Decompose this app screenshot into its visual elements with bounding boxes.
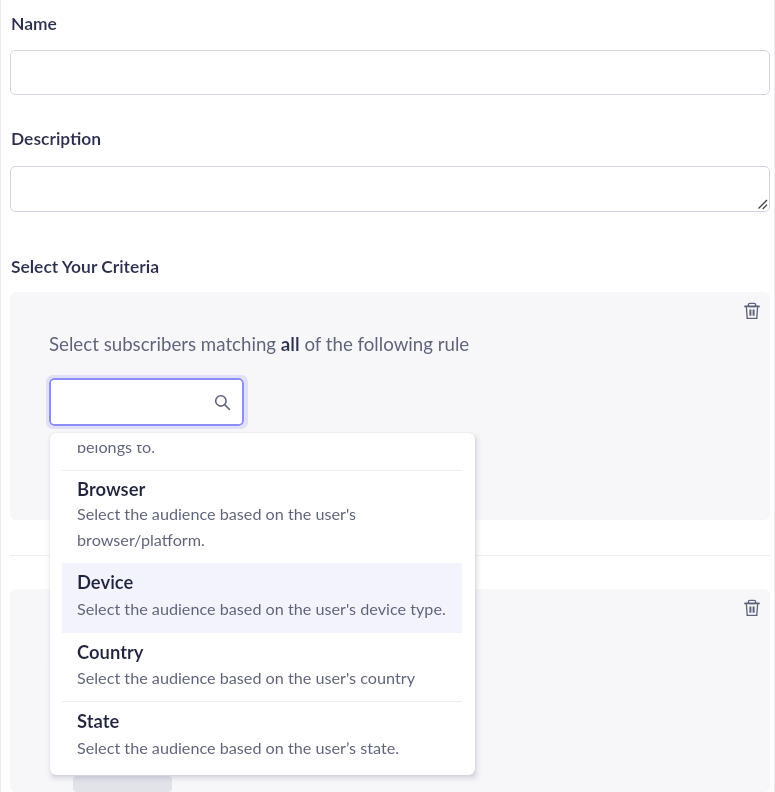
button[interactable]	[49, 378, 244, 426]
button[interactable]: Device	[62, 563, 462, 633]
staticText: Select the audience based on the user’s …	[77, 738, 400, 757]
staticText: Browser	[77, 478, 146, 500]
staticText: Description	[11, 128, 102, 149]
button[interactable]: Delete criteria	[738, 297, 766, 325]
staticText: Select the audience based on the user's …	[77, 504, 357, 550]
button[interactable]: State	[62, 702, 462, 775]
button[interactable]	[73, 776, 172, 792]
staticText: Select the audience based on the user's …	[77, 599, 446, 618]
staticText: Device	[77, 571, 134, 593]
button[interactable]	[10, 50, 770, 95]
staticText: Select the audience based on the user's …	[77, 668, 416, 687]
staticText: Name	[11, 13, 57, 34]
staticText: Select subscribers matching all of the f…	[49, 333, 470, 355]
staticText: Select Your Criteria	[11, 256, 160, 277]
staticText: belongs to.	[77, 445, 155, 456]
staticText: Country	[77, 641, 144, 663]
button[interactable]: Country	[62, 633, 462, 701]
staticText: State	[77, 710, 120, 732]
button[interactable]: Delete criteria	[738, 594, 766, 622]
button[interactable]	[10, 166, 770, 212]
button[interactable]: Browser	[62, 471, 462, 564]
